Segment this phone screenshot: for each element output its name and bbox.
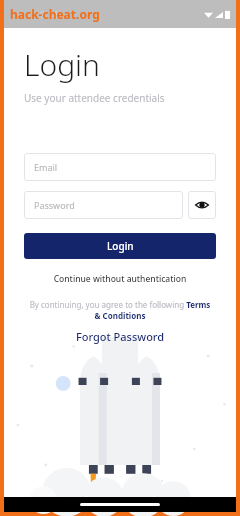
staticText: hack-cheat.org — [10, 6, 100, 22]
staticText: 9.14 — [40, 8, 58, 20]
staticText: Login — [24, 44, 100, 85]
button[interactable]: Continue without authentication — [24, 273, 216, 285]
button[interactable]: Forgot Password — [24, 329, 216, 344]
button[interactable]: Show password — [188, 191, 216, 219]
staticText: Use your attendee credentials — [24, 91, 165, 105]
button[interactable]: Password — [24, 191, 183, 219]
staticText: Login — [107, 239, 134, 253]
button[interactable]: By continuing, you agree to the followin… — [26, 299, 214, 321]
staticText: Password — [34, 199, 75, 211]
staticText: Email — [34, 161, 58, 173]
button[interactable]: Login — [24, 233, 216, 259]
button[interactable]: Email — [24, 153, 216, 181]
